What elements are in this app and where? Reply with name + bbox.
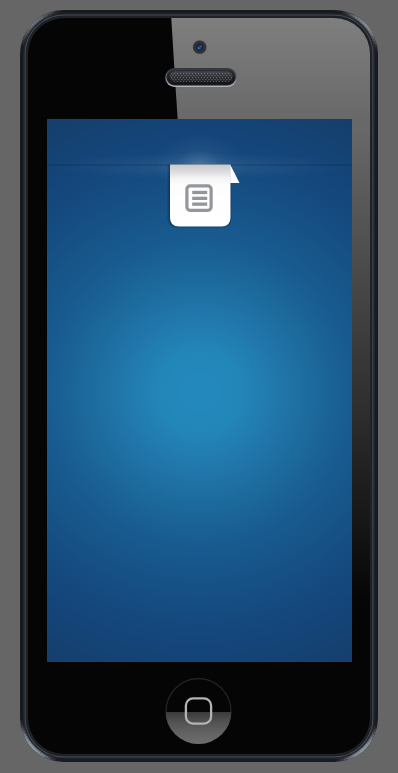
other: Phone mockup with notes app [0, 0, 398, 773]
